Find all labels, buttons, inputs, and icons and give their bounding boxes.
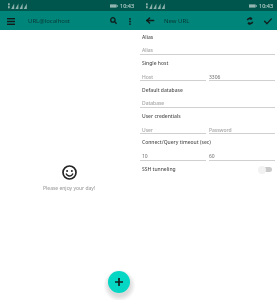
staticText: Single host <box>142 60 169 67</box>
staticText: 60 <box>209 153 215 160</box>
button[interactable]: Save <box>259 12 276 29</box>
staticText: 10:43 <box>259 2 274 9</box>
staticText: New URL <box>164 17 190 25</box>
staticText: 3306 <box>209 74 221 81</box>
staticText: Connect/Query timeout (sec) <box>142 139 211 146</box>
staticText: User credentials <box>142 113 181 120</box>
button[interactable]: Back <box>141 12 158 29</box>
button[interactable]: Add <box>108 271 130 293</box>
staticText: 10:43 <box>120 2 135 9</box>
staticText: SSH tunneling <box>142 166 176 173</box>
staticText: Database <box>142 100 165 107</box>
button[interactable]: Open navigation drawer <box>2 12 20 30</box>
staticText: Password <box>209 127 232 134</box>
staticText: 10 <box>142 153 148 160</box>
button[interactable]: Search <box>105 12 122 29</box>
staticText: Alias <box>142 34 154 41</box>
button[interactable]: SSH tunneling <box>138 162 277 176</box>
button[interactable]: Refresh <box>241 12 258 29</box>
staticText: User <box>142 127 153 134</box>
staticText: Default database <box>142 87 183 94</box>
staticText: URL@localhost <box>28 17 71 25</box>
staticText: Alias <box>142 47 153 54</box>
staticText: Please enjoy your day! <box>43 185 96 192</box>
button[interactable]: More options <box>122 13 138 29</box>
staticText: Host <box>142 74 153 81</box>
